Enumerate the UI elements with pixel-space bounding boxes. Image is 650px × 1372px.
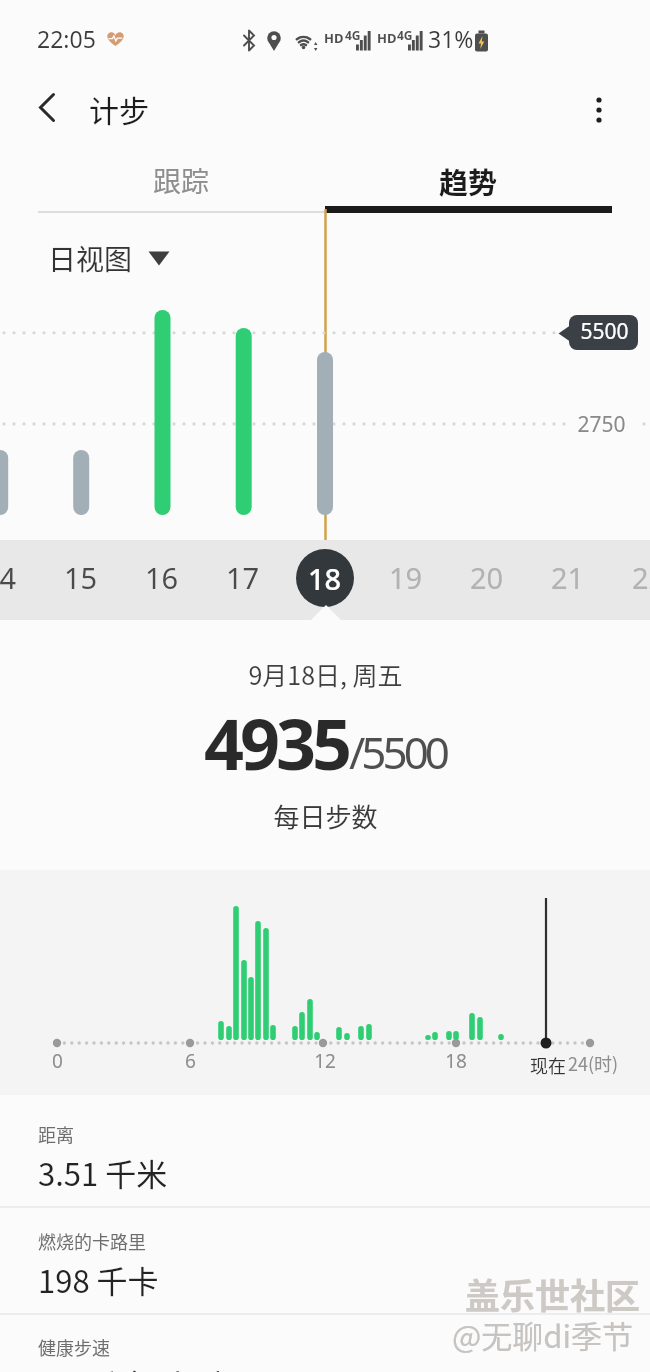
staticText: 31%	[428, 23, 474, 54]
button[interactable]: 19	[366, 552, 446, 602]
button[interactable]	[0, 1315, 650, 1372]
staticText: 6	[185, 1048, 196, 1074]
staticText: 19	[389, 558, 423, 597]
button[interactable]: 15	[41, 552, 121, 602]
staticText: 21	[551, 558, 585, 597]
staticText: HD	[324, 29, 344, 47]
staticText: 趋势	[439, 160, 498, 202]
button[interactable]: 趋势	[325, 155, 612, 206]
staticText: 14	[0, 558, 17, 597]
staticText: 18	[445, 1048, 467, 1074]
button[interactable]: 22	[609, 552, 650, 602]
button[interactable]	[0, 1105, 650, 1206]
staticText: 18	[308, 559, 342, 598]
button[interactable]: 18	[296, 549, 354, 607]
staticText: 0	[52, 1048, 63, 1074]
staticText: 盖乐世社区	[465, 1268, 641, 1319]
staticText: 22	[632, 558, 650, 597]
staticText: @无聊di季节	[452, 1312, 634, 1357]
button[interactable]: 跟踪	[38, 155, 325, 206]
staticText: 距离	[38, 1121, 74, 1147]
staticText: 198 千卡	[38, 1257, 159, 1302]
staticText: /5500	[349, 722, 447, 782]
staticText: 跟踪	[153, 160, 210, 201]
staticText: 现在	[530, 1052, 566, 1078]
button[interactable]: 17	[203, 552, 283, 602]
staticText: 计步	[89, 87, 149, 130]
staticText: 2750	[577, 410, 626, 439]
staticText: 3.51 千米	[38, 1150, 168, 1195]
staticText: 22:05	[37, 23, 96, 54]
staticText: 燃烧的卡路里	[38, 1228, 146, 1254]
staticText: 20	[470, 558, 504, 597]
button[interactable]	[575, 85, 623, 135]
button[interactable]	[22, 82, 72, 132]
staticText: 4G	[345, 27, 361, 43]
button[interactable]: 20	[447, 552, 527, 602]
button[interactable]: 14	[0, 552, 40, 602]
staticText: 4935	[204, 695, 349, 790]
staticText: 6.0 千米/小时	[38, 1361, 225, 1372]
button[interactable]	[0, 1208, 650, 1313]
staticText: 24(时)	[568, 1050, 619, 1076]
staticText: 5500	[580, 317, 629, 346]
staticText: 9月18日, 周五	[248, 656, 403, 692]
staticText: 17	[226, 558, 260, 597]
staticText: HD	[377, 29, 397, 47]
staticText: 12	[314, 1048, 336, 1074]
staticText: 4G	[397, 27, 413, 43]
staticText: 15	[64, 558, 98, 597]
staticText: 16	[145, 558, 179, 597]
staticText: 每日步数	[273, 797, 378, 835]
button[interactable]: 21	[528, 552, 608, 602]
button[interactable]: 16	[122, 552, 202, 602]
button[interactable]	[40, 233, 178, 273]
staticText: 日视图	[48, 238, 133, 279]
staticText: 健康步速	[38, 1334, 110, 1360]
